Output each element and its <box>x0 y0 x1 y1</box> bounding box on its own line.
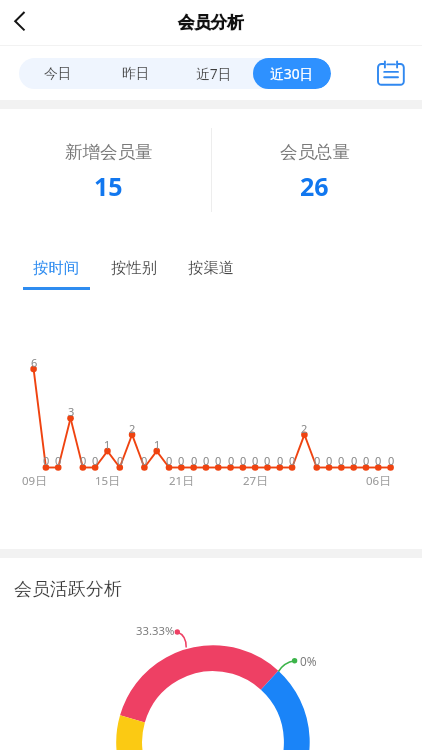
staticText: 0 <box>240 453 247 468</box>
button[interactable]: 按时间 <box>33 248 80 293</box>
staticText: 06日 <box>366 473 391 489</box>
staticText: 0 <box>92 453 99 468</box>
staticText: 3 <box>68 404 75 419</box>
staticText: 按性别 <box>111 258 158 277</box>
staticText: 0 <box>314 453 321 468</box>
staticText: 33.33% <box>136 623 175 638</box>
staticText: 0 <box>117 453 124 468</box>
staticText: 27日 <box>243 473 268 489</box>
staticText: 0 <box>375 453 382 468</box>
staticText: 0 <box>388 453 395 468</box>
staticText: 近30日 <box>270 64 314 83</box>
button[interactable]: 昨日 <box>97 58 175 89</box>
button[interactable]: 近7日 <box>175 58 253 89</box>
staticText: 0 <box>277 453 284 468</box>
staticText: 0 <box>166 453 173 468</box>
staticText: 09日 <box>22 473 47 489</box>
button[interactable]: 按性别 <box>111 248 158 293</box>
staticText: 2 <box>129 421 136 436</box>
staticText: 会员总量 <box>280 141 350 163</box>
button[interactable]: 新增会员量 <box>3 109 214 219</box>
staticText: 0% <box>300 653 317 669</box>
staticText: 近7日 <box>196 64 232 83</box>
staticText: 0 <box>363 453 370 468</box>
button[interactable]: 会员总量 <box>209 109 420 219</box>
staticText: 1 <box>154 437 161 452</box>
staticText: 会员分析 <box>178 12 244 33</box>
staticText: 0 <box>203 453 210 468</box>
staticText: 0 <box>326 453 333 468</box>
staticText: 0 <box>228 453 235 468</box>
staticText: 0 <box>289 453 296 468</box>
staticText: 0 <box>215 453 222 468</box>
staticText: 15日 <box>95 473 120 489</box>
staticText: 按渠道 <box>188 258 235 277</box>
button[interactable]: 今日 <box>19 58 97 89</box>
staticText: 0 <box>141 453 148 468</box>
staticText: 0 <box>252 453 259 468</box>
staticText: 26 <box>300 169 329 203</box>
staticText: 今日 <box>44 65 72 82</box>
button[interactable]: Back <box>0 0 46 45</box>
staticText: 按时间 <box>33 258 80 277</box>
staticText: 0 <box>351 453 358 468</box>
staticText: 昨日 <box>122 65 150 82</box>
button[interactable]: 近30日 <box>253 58 331 89</box>
staticText: 0 <box>191 453 198 468</box>
staticText: 0 <box>178 453 185 468</box>
staticText: 6 <box>31 355 38 370</box>
staticText: 新增会员量 <box>65 141 153 163</box>
staticText: 0 <box>338 453 345 468</box>
button[interactable]: 按渠道 <box>188 248 235 293</box>
staticText: 15 <box>94 169 123 203</box>
staticText: 1 <box>104 437 111 452</box>
staticText: 0 <box>55 453 62 468</box>
staticText: 21日 <box>169 473 194 489</box>
staticText: 0 <box>80 453 87 468</box>
staticText: 0 <box>43 453 50 468</box>
staticText: 会员活跃分析 <box>14 578 122 601</box>
button[interactable]: Report <box>373 56 407 90</box>
staticText: 0 <box>264 453 271 468</box>
staticText: 2 <box>301 421 308 436</box>
